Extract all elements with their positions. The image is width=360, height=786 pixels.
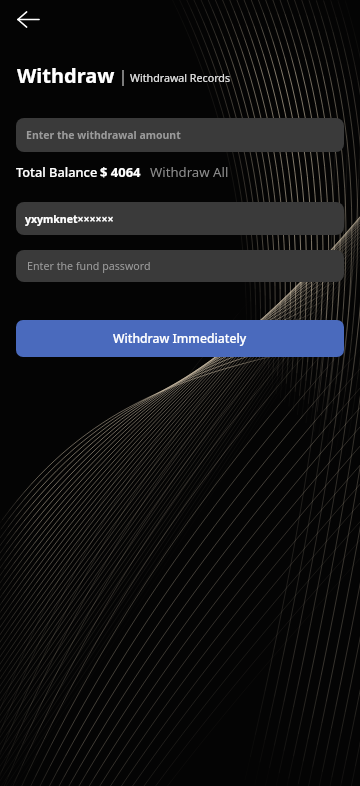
staticText: Withdraw Immediately (113, 330, 247, 347)
staticText: Enter the fund password (27, 259, 151, 274)
button[interactable]: Enter the fund password (16, 250, 344, 282)
button[interactable]: Withdraw Immediately (16, 320, 344, 357)
button[interactable]: Withdraw All (150, 163, 229, 181)
button[interactable]: Withdrawal Records (130, 71, 231, 86)
button[interactable]: Back (8, 0, 48, 39)
staticText: yxymknet×××××× (25, 212, 114, 226)
button[interactable]: Enter the withdrawal amount (16, 118, 344, 152)
staticText: $ 4064 (100, 163, 141, 181)
button[interactable]: yxymknet×××××× (16, 202, 344, 235)
staticText: Enter the withdrawal amount (26, 128, 181, 142)
staticText: Withdraw (17, 62, 115, 89)
staticText: Total Balance (16, 163, 98, 180)
